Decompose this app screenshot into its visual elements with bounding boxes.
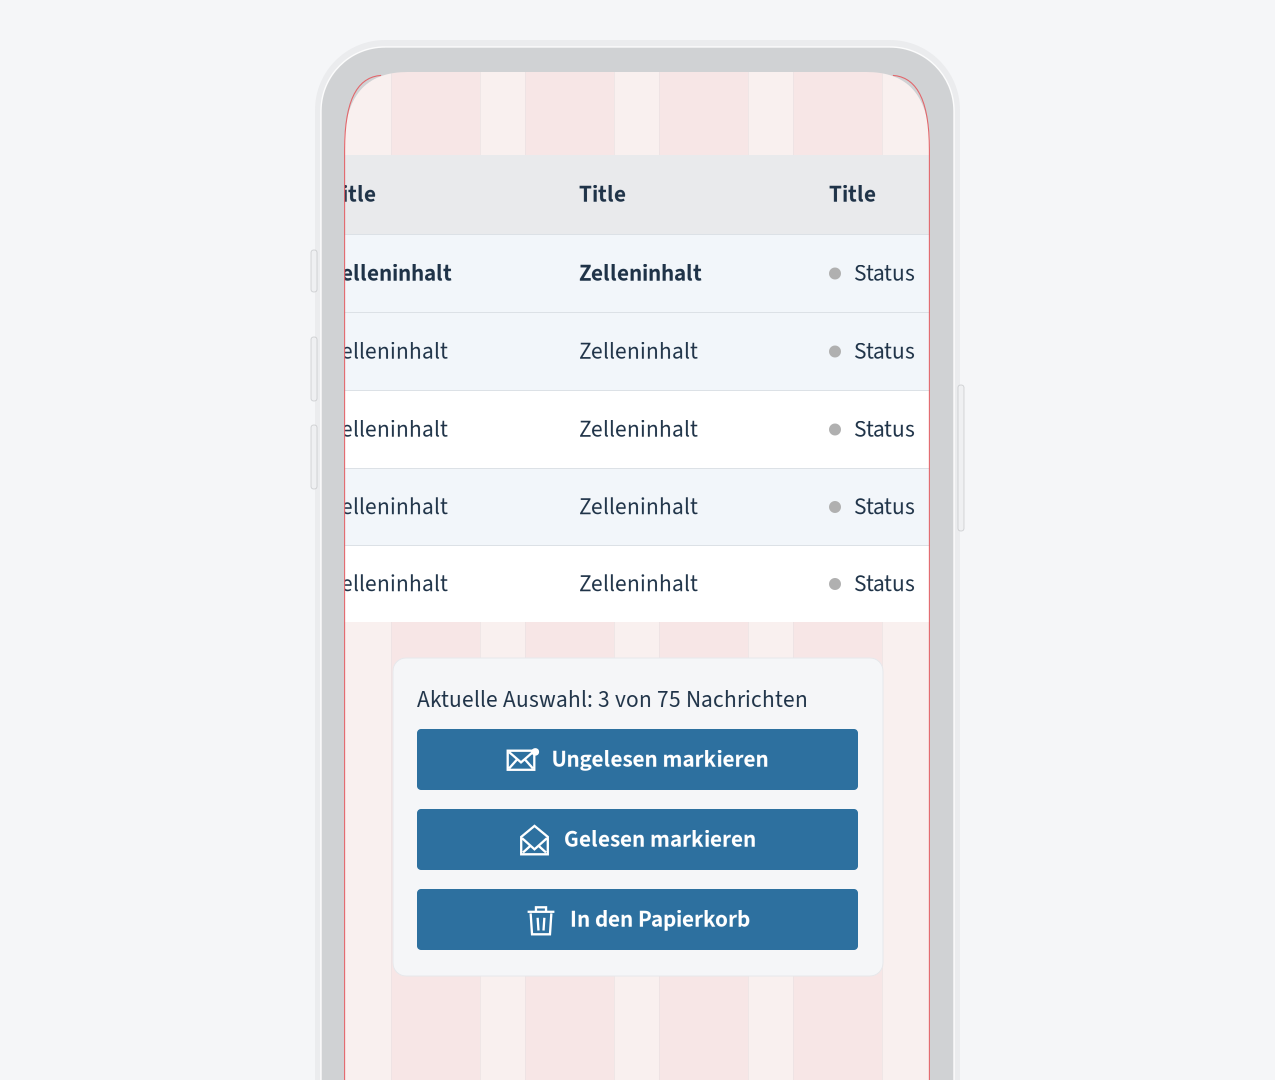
staticText: Zelleninhalt	[579, 413, 698, 446]
button[interactable]: Ungelesen markieren	[417, 729, 858, 790]
staticText: Title	[579, 178, 626, 211]
staticText: Zelleninhalt	[329, 490, 448, 524]
staticText: Status	[854, 257, 915, 290]
staticText: Zelleninhalt	[329, 335, 448, 368]
staticText: Gelesen markieren	[564, 823, 756, 856]
staticText: Status	[854, 413, 915, 446]
button[interactable]: Gelesen markieren	[417, 809, 858, 870]
staticText: Zelleninhalt	[329, 257, 452, 290]
staticText: In den Papierkorb	[570, 903, 750, 936]
staticText: Zelleninhalt	[579, 490, 698, 524]
staticText: Aktuelle Auswahl: 3 von 75 Nachrichten	[417, 683, 808, 716]
staticText: Status	[854, 490, 915, 524]
staticText: Status	[854, 335, 915, 368]
staticText: Zelleninhalt	[579, 257, 702, 290]
staticText: Title	[829, 178, 876, 211]
staticText: Zelleninhalt	[329, 413, 448, 446]
staticText: Title	[329, 178, 376, 211]
staticText: Zelleninhalt	[329, 567, 448, 601]
staticText: Zelleninhalt	[579, 567, 698, 601]
staticText: Ungelesen markieren	[551, 743, 768, 776]
staticText: Zelleninhalt	[579, 335, 698, 368]
staticText: Status	[854, 567, 915, 601]
button[interactable]: In den Papierkorb	[417, 889, 858, 950]
